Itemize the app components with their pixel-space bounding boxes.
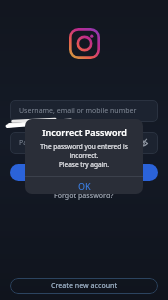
button[interactable]: Forgot password? bbox=[10, 191, 158, 201]
staticText: The password you entered is incorrect. P… bbox=[30, 142, 138, 169]
button[interactable]: Log in bbox=[10, 164, 158, 181]
button[interactable]: Username, email or mobile number bbox=[10, 100, 158, 122]
staticText: Username, email or mobile number bbox=[19, 106, 137, 116]
staticText: Create new account bbox=[51, 281, 118, 291]
staticText: Password bbox=[19, 138, 51, 148]
staticText: Forgot password? bbox=[54, 191, 114, 201]
button[interactable]: Create new account bbox=[10, 278, 158, 294]
staticText: Log in bbox=[74, 168, 95, 178]
button[interactable]: Show password bbox=[135, 136, 149, 150]
staticText: OK bbox=[78, 180, 91, 192]
button[interactable]: Password bbox=[10, 132, 158, 154]
button[interactable]: OK bbox=[25, 177, 143, 194]
staticText: Incorrect Password bbox=[42, 126, 127, 138]
